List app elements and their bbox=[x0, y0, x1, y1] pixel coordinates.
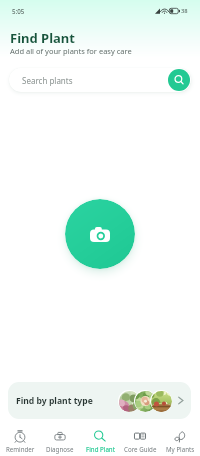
staticText: Add all of your plants for easy care bbox=[10, 46, 132, 56]
button[interactable]: Search plants bbox=[9, 68, 191, 92]
button[interactable]: Find by plant type bbox=[8, 382, 191, 419]
button[interactable]: Identify plant with camera bbox=[65, 199, 135, 269]
button[interactable]: Find Plant bbox=[80, 424, 120, 456]
staticText: Diagnose bbox=[46, 445, 74, 453]
button[interactable]: Diagnose bbox=[40, 424, 80, 456]
button[interactable]: My Plants bbox=[160, 424, 200, 456]
button[interactable]: Search bbox=[168, 69, 190, 91]
staticText: My Plants bbox=[166, 445, 195, 453]
button[interactable]: Reminder bbox=[0, 424, 40, 456]
staticText: Find by plant type bbox=[16, 395, 93, 407]
staticText: Search plants bbox=[22, 75, 73, 86]
staticText: Core Guide bbox=[124, 445, 157, 453]
staticText: 5:05 bbox=[12, 7, 25, 15]
staticText: 38 bbox=[181, 7, 188, 15]
staticText: Find Plant bbox=[10, 29, 75, 47]
staticText: Reminder bbox=[6, 445, 35, 453]
staticText: Find Plant bbox=[86, 445, 115, 453]
button[interactable]: Core Guide bbox=[120, 424, 160, 456]
other: View plant types bbox=[175, 395, 186, 406]
